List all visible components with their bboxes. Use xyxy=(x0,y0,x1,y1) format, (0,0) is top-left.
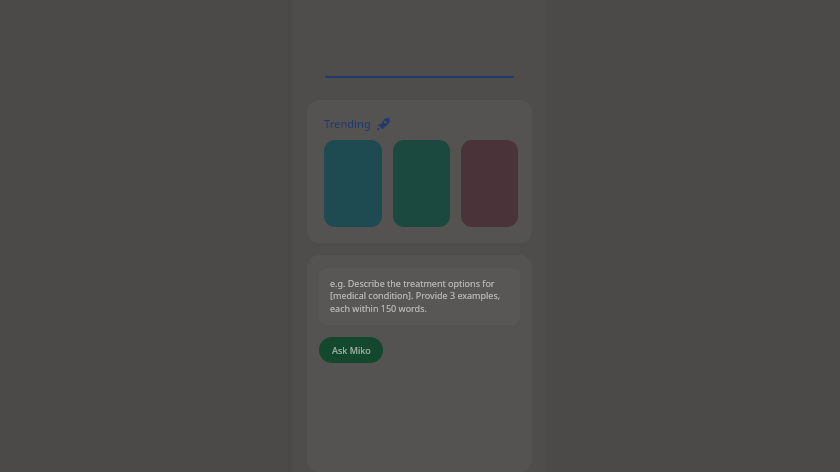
staticText: Ask Miko xyxy=(332,344,371,356)
button[interactable]: Ask Miko xyxy=(319,337,383,363)
staticText: Trending xyxy=(324,116,371,131)
button[interactable] xyxy=(461,140,518,227)
button[interactable]: e.g. Describe the treatment options for … xyxy=(319,268,520,325)
button[interactable]: Trending xyxy=(307,100,532,243)
button[interactable] xyxy=(393,140,450,227)
staticText: e.g. Describe the treatment options for … xyxy=(330,277,508,315)
button[interactable] xyxy=(324,140,382,227)
other: Trending xyxy=(377,117,390,130)
